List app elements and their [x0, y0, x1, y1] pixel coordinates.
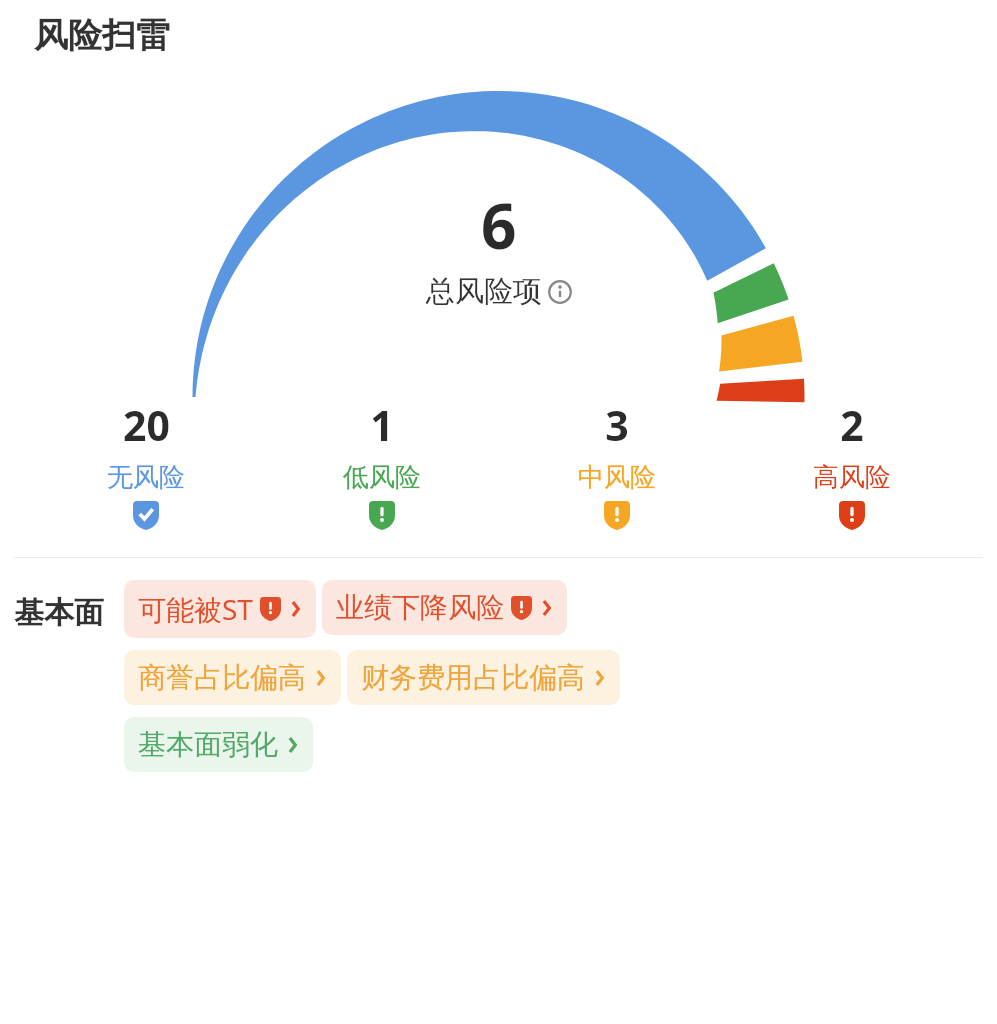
staticText: 基本面 [14, 594, 104, 632]
staticText: 无风险 [107, 461, 185, 494]
staticText: 业绩下降风险 [336, 590, 504, 625]
staticText: 1 [370, 397, 394, 453]
button[interactable]: 总风险项 [426, 273, 572, 310]
staticText: 低风险 [343, 461, 421, 494]
staticText: 风险扫雷 [34, 14, 170, 57]
other: Info [548, 280, 572, 304]
button[interactable]: 基本面弱化 [124, 717, 313, 772]
button[interactable]: 财务费用占比偏高 [347, 650, 620, 705]
button[interactable]: 1 [264, 397, 499, 530]
staticText: 3 [605, 397, 629, 453]
button[interactable]: 3 [499, 397, 734, 530]
button[interactable]: 20 [28, 397, 264, 530]
staticText: 商誉占比偏高 [138, 660, 306, 695]
staticText: 可能被ST [138, 590, 253, 628]
staticText: 总风险项 [426, 273, 542, 310]
staticText: 20 [123, 397, 170, 453]
staticText: 财务费用占比偏高 [361, 660, 585, 695]
staticText: 2 [840, 397, 864, 453]
staticText: 中风险 [578, 461, 656, 494]
button[interactable]: 业绩下降风险 [322, 580, 567, 635]
button[interactable]: 2 [734, 397, 969, 530]
staticText: 6 [481, 183, 517, 267]
staticText: 高风险 [813, 461, 891, 494]
button[interactable]: 商誉占比偏高 [124, 650, 341, 705]
staticText: 基本面弱化 [138, 727, 278, 762]
button[interactable]: 可能被ST [124, 580, 316, 638]
